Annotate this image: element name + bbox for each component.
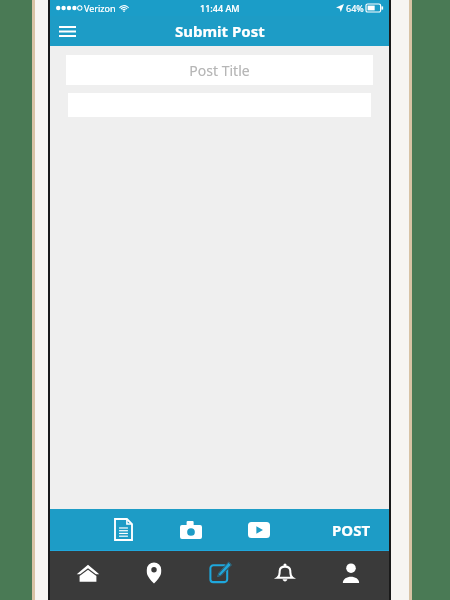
staticText: Post Title — [189, 61, 250, 80]
button[interactable]: POST — [332, 509, 371, 550]
staticText: Submit Post — [175, 21, 265, 41]
button[interactable]: Menu — [50, 16, 84, 46]
button[interactable]: Profile — [323, 551, 379, 594]
button[interactable]: Places — [126, 551, 182, 594]
button[interactable]: Take photo — [168, 509, 214, 550]
button[interactable]: Notifications — [257, 551, 313, 594]
staticText: 64% — [346, 2, 364, 14]
button[interactable]: Attach document — [100, 509, 146, 550]
button[interactable]: Add video — [236, 509, 282, 550]
button[interactable]: Home — [60, 551, 116, 594]
button[interactable]: Compose — [192, 551, 248, 594]
staticText: POST — [332, 520, 371, 540]
staticText: 11:44 AM — [200, 2, 240, 14]
staticText: Verizon — [84, 2, 116, 14]
button[interactable]: Post Title — [66, 55, 373, 85]
